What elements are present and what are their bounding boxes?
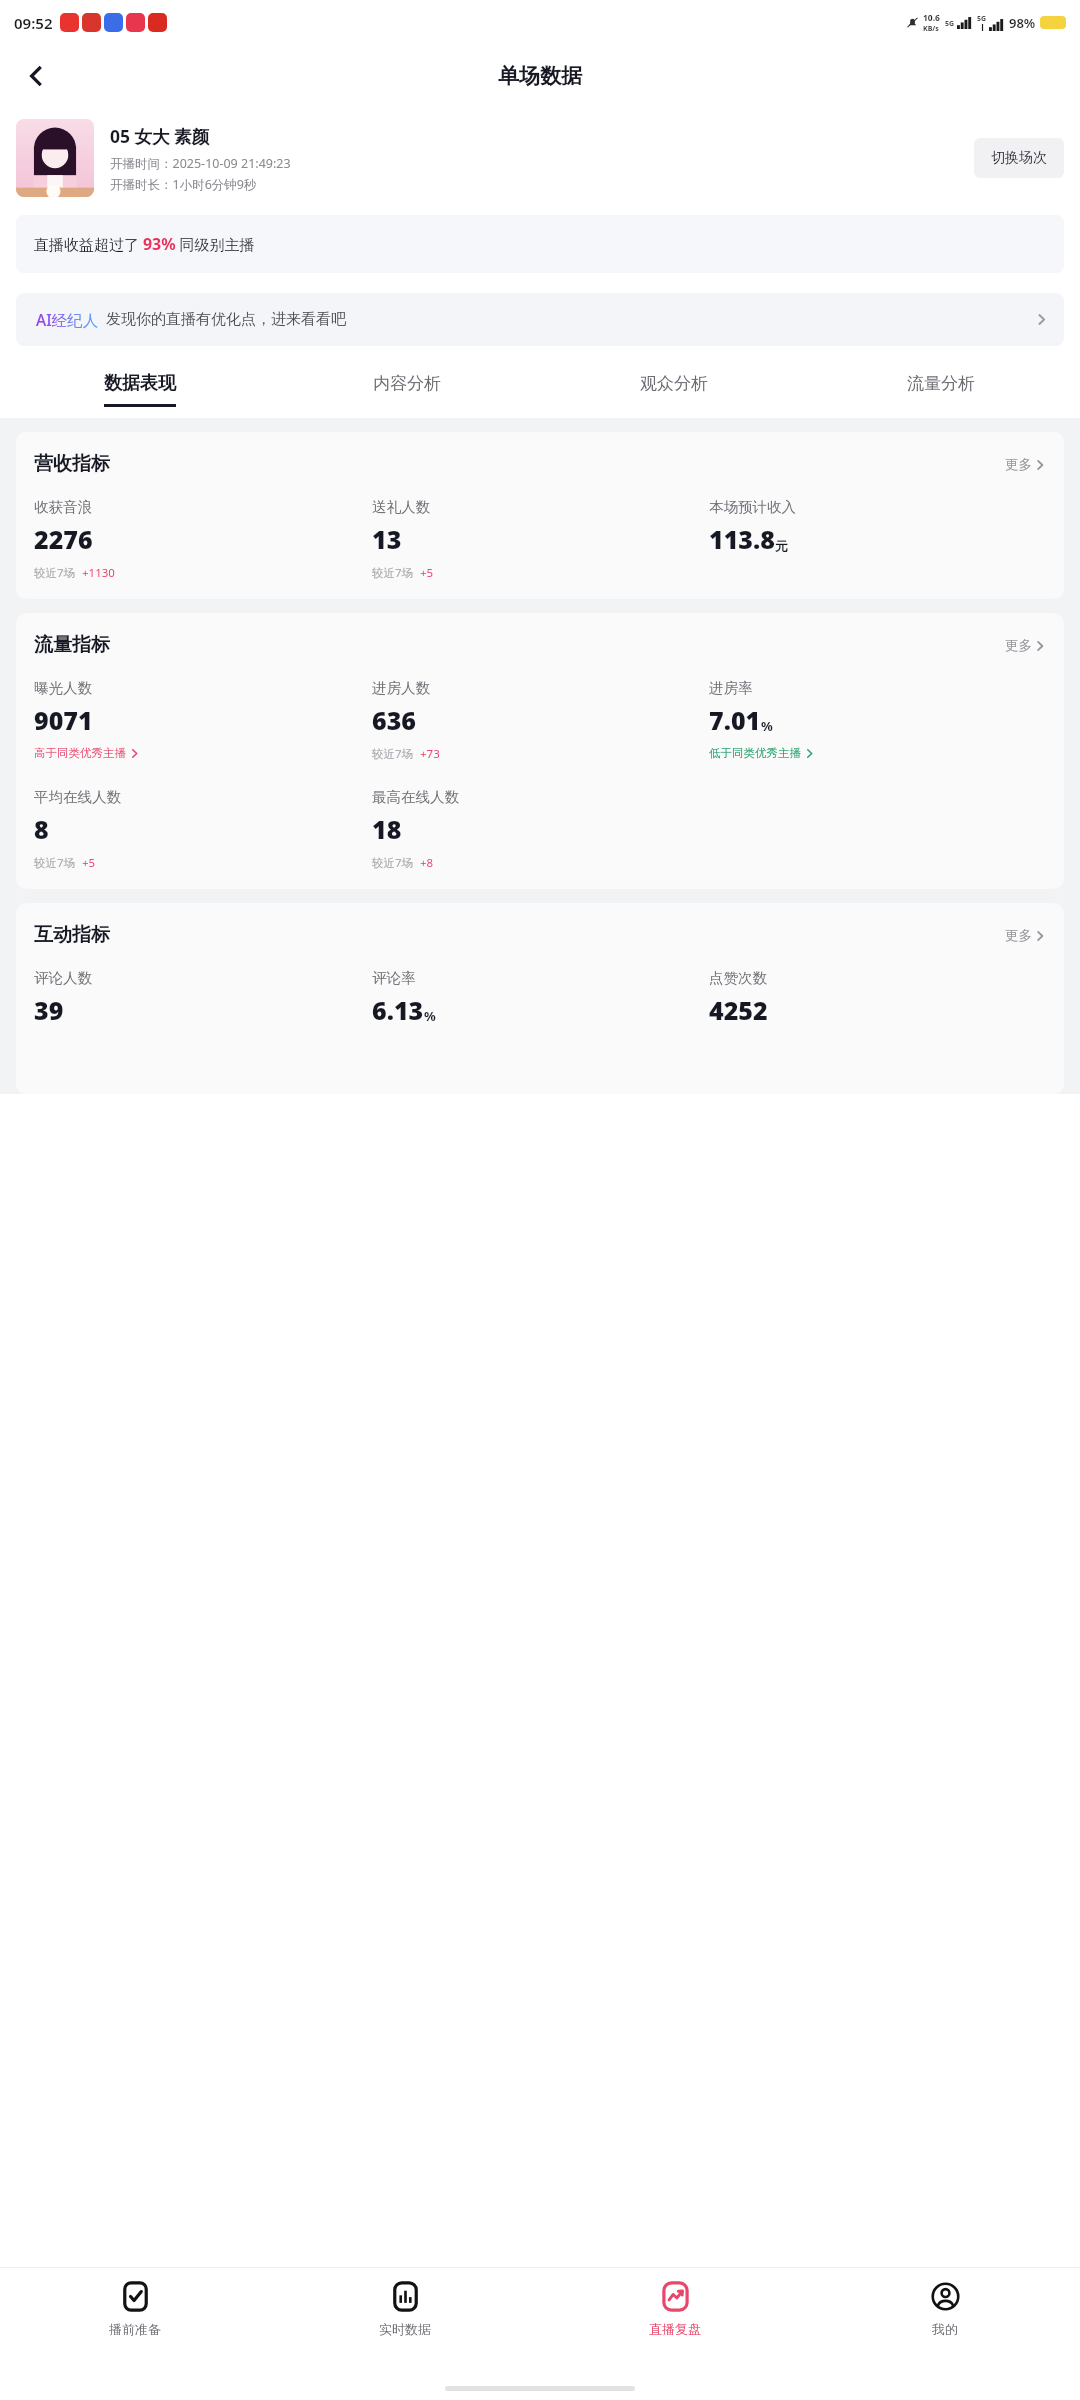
staticText: 本场预计收入: [709, 498, 796, 516]
staticText: KB/s: [923, 24, 939, 34]
staticText: 较近7场: [372, 855, 414, 871]
button[interactable]: 更多: [1005, 927, 1046, 944]
staticText: +1130: [82, 565, 115, 581]
staticText: 评论率: [372, 969, 416, 987]
staticText: 39: [34, 993, 64, 1027]
button[interactable]: Back: [10, 50, 62, 102]
staticText: 636: [372, 703, 416, 737]
staticText: 营收指标: [34, 452, 110, 476]
staticText: 18: [372, 812, 402, 846]
staticText: 观众分析: [640, 373, 708, 394]
staticText: 更多: [1005, 456, 1032, 473]
button[interactable]: 观众分析: [540, 360, 807, 418]
staticText: 播前准备: [109, 2321, 161, 2337]
staticText: 2276: [34, 522, 93, 556]
staticText: +73: [420, 746, 440, 762]
button[interactable]: 直播收益超过了 93% 同级别主播: [16, 215, 1064, 273]
staticText: 较近7场: [34, 565, 76, 581]
button[interactable]: 数据表现: [6, 360, 273, 418]
button[interactable]: 播前准备: [0, 2268, 270, 2376]
staticText: 更多: [1005, 927, 1032, 944]
staticText: 10.6: [923, 12, 940, 24]
staticText: 互动指标: [34, 923, 110, 947]
staticText: 05 女大 素颜: [110, 124, 210, 148]
staticText: 更多: [1005, 637, 1032, 654]
staticText: 高于同类优秀主播: [34, 746, 126, 760]
staticText: 113.8: [709, 522, 775, 556]
button[interactable]: 高于同类优秀主播: [34, 746, 140, 760]
staticText: 元: [775, 538, 788, 554]
staticText: 流量指标: [34, 633, 110, 657]
staticText: 我的: [932, 2321, 958, 2337]
staticText: 送礼人数: [372, 498, 430, 516]
staticText: 收获音浪: [34, 498, 92, 516]
staticText: 开播时间：2025-10-09 21:49:23: [110, 155, 291, 172]
staticText: %: [761, 717, 773, 735]
staticText: 8: [34, 812, 49, 846]
staticText: 评论人数: [34, 969, 92, 987]
staticText: AI经纪人: [36, 309, 99, 330]
staticText: 98%: [1009, 14, 1036, 32]
button[interactable]: 我的: [810, 2268, 1080, 2376]
staticText: 9071: [34, 703, 93, 737]
button[interactable]: 更多: [1005, 456, 1046, 473]
staticText: %: [424, 1007, 436, 1025]
staticText: 最高在线人数: [372, 788, 459, 806]
button[interactable]: 切换场次: [974, 138, 1064, 178]
staticText: 内容分析: [373, 373, 441, 394]
staticText: 进房人数: [372, 679, 430, 697]
staticText: 流量分析: [907, 373, 975, 394]
staticText: 曝光人数: [34, 679, 92, 697]
staticText: 单场数据: [498, 63, 582, 89]
staticText: 较近7场: [34, 855, 76, 871]
staticText: +5: [82, 855, 96, 871]
staticText: 开播时长：1小时6分钟9秒: [110, 176, 257, 193]
button[interactable]: 流量分析: [807, 360, 1074, 418]
staticText: 7.01: [709, 703, 761, 737]
button[interactable]: 内容分析: [273, 360, 540, 418]
staticText: 低于同类优秀主播: [709, 746, 801, 760]
staticText: 切换场次: [991, 149, 1047, 167]
staticText: 5G: [945, 19, 955, 29]
staticText: 09:52: [14, 13, 53, 33]
button[interactable]: 更多: [1005, 637, 1046, 654]
button[interactable]: 直播复盘: [540, 2268, 810, 2376]
staticText: 发现你的直播有优化点，进来看看吧: [106, 310, 346, 329]
button[interactable]: 低于同类优秀主播: [709, 746, 815, 760]
button[interactable]: 实时数据: [270, 2268, 540, 2376]
staticText: +8: [420, 855, 434, 871]
staticText: 点赞次数: [709, 969, 767, 987]
staticText: 实时数据: [379, 2321, 431, 2337]
staticText: 数据表现: [104, 372, 176, 395]
staticText: 平均在线人数: [34, 788, 121, 806]
staticText: 较近7场: [372, 746, 414, 762]
staticText: 较近7场: [372, 565, 414, 581]
staticText: 5G: [977, 14, 987, 24]
staticText: +5: [420, 565, 434, 581]
staticText: 6.13: [372, 993, 424, 1027]
staticText: 直播收益超过了 93% 同级别主播: [34, 233, 255, 255]
staticText: 13: [372, 522, 402, 556]
button[interactable]: AI经纪人: [16, 293, 1064, 346]
staticText: 直播复盘: [649, 2321, 701, 2337]
staticText: 进房率: [709, 679, 753, 697]
staticText: 4252: [709, 993, 768, 1027]
